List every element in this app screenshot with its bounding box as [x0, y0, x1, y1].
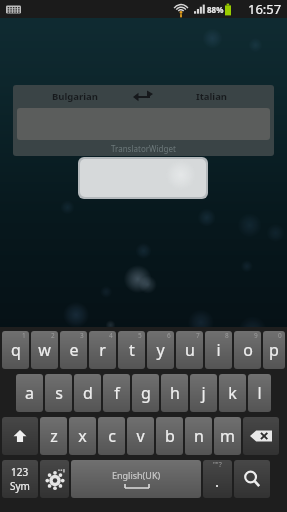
button[interactable]: s — [45, 374, 72, 412]
button[interactable]: Keyboard settings — [40, 460, 69, 498]
button[interactable]: Swap languages — [126, 87, 160, 107]
button[interactable]: x — [69, 417, 96, 455]
button[interactable]: i — [205, 331, 232, 369]
staticText: p — [269, 339, 279, 361]
staticText: 88% — [207, 4, 224, 15]
button[interactable]: r — [89, 331, 116, 369]
staticText: 0 — [278, 331, 282, 340]
staticText: 4 — [109, 331, 113, 340]
button[interactable]: Shift — [2, 417, 38, 455]
staticText: m — [220, 425, 235, 447]
staticText: s — [55, 382, 63, 404]
staticText: h — [170, 382, 180, 404]
staticText: ""? — [213, 460, 222, 470]
staticText: Italian — [196, 90, 228, 103]
button[interactable]: q — [2, 331, 29, 369]
staticText: t — [129, 339, 135, 361]
staticText: c — [108, 425, 116, 447]
staticText: n — [194, 425, 204, 447]
staticText: 8 — [225, 331, 229, 340]
staticText: f — [114, 382, 120, 404]
staticText: d — [83, 382, 93, 404]
staticText: u — [185, 339, 195, 361]
button[interactable]: n — [185, 417, 212, 455]
staticText: w — [38, 339, 51, 361]
button[interactable] — [80, 159, 206, 197]
staticText: z — [50, 425, 58, 447]
button[interactable]: b — [156, 417, 183, 455]
button[interactable]: w — [31, 331, 58, 369]
staticText: e — [69, 339, 79, 361]
button[interactable]: Bulgarian — [13, 85, 274, 156]
button[interactable]: g — [132, 374, 159, 412]
button[interactable]: Space, English(UK) — [71, 460, 201, 498]
button[interactable]: l — [248, 374, 271, 412]
staticText: v — [136, 425, 145, 447]
staticText: 16:57 — [248, 0, 282, 18]
staticText: x — [78, 425, 87, 447]
staticText: 6 — [167, 331, 171, 340]
staticText: 123 — [11, 465, 29, 479]
staticText: g — [141, 382, 151, 404]
staticText: 5 — [138, 331, 142, 340]
button[interactable]: e — [60, 331, 87, 369]
staticText: l — [257, 382, 262, 404]
button[interactable]: k — [219, 374, 246, 412]
staticText: 3 — [80, 331, 84, 340]
staticText: o — [243, 339, 253, 361]
button[interactable]: z — [40, 417, 67, 455]
staticText: 2 — [51, 331, 55, 340]
staticText: b — [165, 425, 175, 447]
button[interactable]: o — [234, 331, 261, 369]
staticText: k — [228, 382, 237, 404]
button[interactable]: a — [16, 374, 43, 412]
button[interactable]: Search — [234, 460, 270, 498]
button[interactable]: 123 — [2, 460, 38, 498]
staticText: English(UK) — [112, 469, 161, 481]
staticText: TranslatorWidget — [111, 143, 176, 154]
staticText: r — [99, 339, 106, 361]
button[interactable]: u — [176, 331, 203, 369]
button[interactable]: h — [161, 374, 188, 412]
staticText: y — [156, 339, 165, 361]
staticText: a — [25, 382, 34, 404]
staticText: 9 — [254, 331, 258, 340]
button[interactable]: t — [118, 331, 145, 369]
button[interactable]: m — [214, 417, 241, 455]
button[interactable]: Period — [203, 460, 232, 498]
button[interactable]: y — [147, 331, 174, 369]
staticText: i — [216, 339, 221, 361]
staticText: q — [11, 339, 21, 361]
staticText: . — [215, 471, 220, 491]
staticText: Sym — [10, 479, 30, 493]
button[interactable]: c — [98, 417, 125, 455]
button[interactable]: j — [190, 374, 217, 412]
button[interactable]: v — [127, 417, 154, 455]
button[interactable]: p — [263, 331, 285, 369]
button[interactable]: d — [74, 374, 101, 412]
staticText: j — [201, 382, 206, 404]
button[interactable]: f — [103, 374, 130, 412]
staticText: 1 — [22, 331, 26, 340]
staticText: 7 — [196, 331, 200, 340]
staticText: Bulgarian — [52, 90, 98, 103]
button[interactable]: Backspace — [243, 417, 279, 455]
